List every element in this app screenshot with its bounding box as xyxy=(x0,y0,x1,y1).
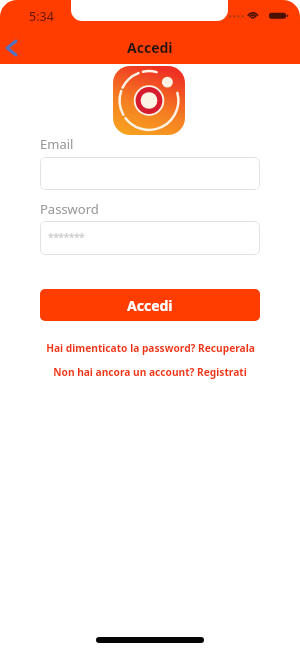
button[interactable]: ******* xyxy=(40,221,260,255)
button[interactable]: Accedi xyxy=(40,289,260,321)
button[interactable]: Back xyxy=(0,30,34,64)
staticText: Non hai ancora un account? Registrati xyxy=(53,365,247,379)
staticText: Accedi xyxy=(127,38,173,57)
staticText: ******* xyxy=(48,230,85,244)
staticText: Hai dimenticato la password? Recuperala xyxy=(46,341,255,355)
button[interactable]: Hai dimenticato la password? Recuperala xyxy=(40,341,260,355)
staticText: Email xyxy=(40,135,74,153)
staticText: 5:34 xyxy=(29,8,54,25)
staticText: Accedi xyxy=(127,296,173,315)
staticText: Password xyxy=(40,200,99,218)
button[interactable]: Non hai ancora un account? Registrati xyxy=(40,365,260,379)
button[interactable] xyxy=(40,157,260,190)
